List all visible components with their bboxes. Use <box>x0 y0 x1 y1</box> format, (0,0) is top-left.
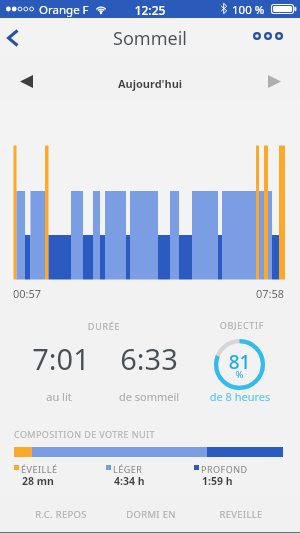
staticText: 00:57 <box>13 286 42 301</box>
button[interactable]: Back <box>0 18 32 57</box>
staticText: 28 mn <box>22 474 54 488</box>
staticText: 07:58 <box>256 286 285 301</box>
staticText: 7:01 <box>21 339 101 378</box>
staticText: % <box>214 368 265 380</box>
staticText: au lit <box>19 389 99 404</box>
button[interactable]: DORMI EN <box>106 497 196 532</box>
staticText: 12:25 <box>0 2 300 18</box>
staticText: R.C. REPOS <box>16 508 106 521</box>
staticText: Aujourd'hui <box>0 76 300 91</box>
button[interactable]: R.C. REPOS <box>16 497 106 532</box>
staticText: 81 <box>214 349 265 375</box>
button[interactable]: Next day <box>248 57 300 100</box>
staticText: 6:33 <box>109 339 189 378</box>
staticText: de sommeil <box>109 389 189 404</box>
staticText: ÉVEILLÉ <box>21 463 58 475</box>
button[interactable]: More options <box>251 30 285 42</box>
button[interactable]: ÉVEILLÉ <box>13 463 101 489</box>
staticText: COMPOSITION DE VOTRE NUIT <box>14 428 155 440</box>
staticText: DORMI EN <box>106 508 196 521</box>
staticText: de 8 heures <box>199 389 281 404</box>
button[interactable]: REVEILLE <box>196 497 286 532</box>
staticText: REVEILLE <box>196 508 286 521</box>
staticText: DURÉE <box>64 320 144 332</box>
staticText: 1:59 h <box>202 474 233 488</box>
staticText: OBJECTIF <box>202 319 282 331</box>
staticText: Orange F <box>39 2 89 18</box>
staticText: 4:34 h <box>114 474 145 488</box>
button[interactable]: LÉGER <box>105 463 193 489</box>
button[interactable]: PROFOND <box>193 463 281 489</box>
button[interactable]: Previous day <box>0 57 52 100</box>
staticText: 100 % <box>232 2 265 18</box>
staticText: Sommeil <box>0 26 300 51</box>
staticText: PROFOND <box>201 463 248 475</box>
staticText: LÉGER <box>113 463 143 475</box>
